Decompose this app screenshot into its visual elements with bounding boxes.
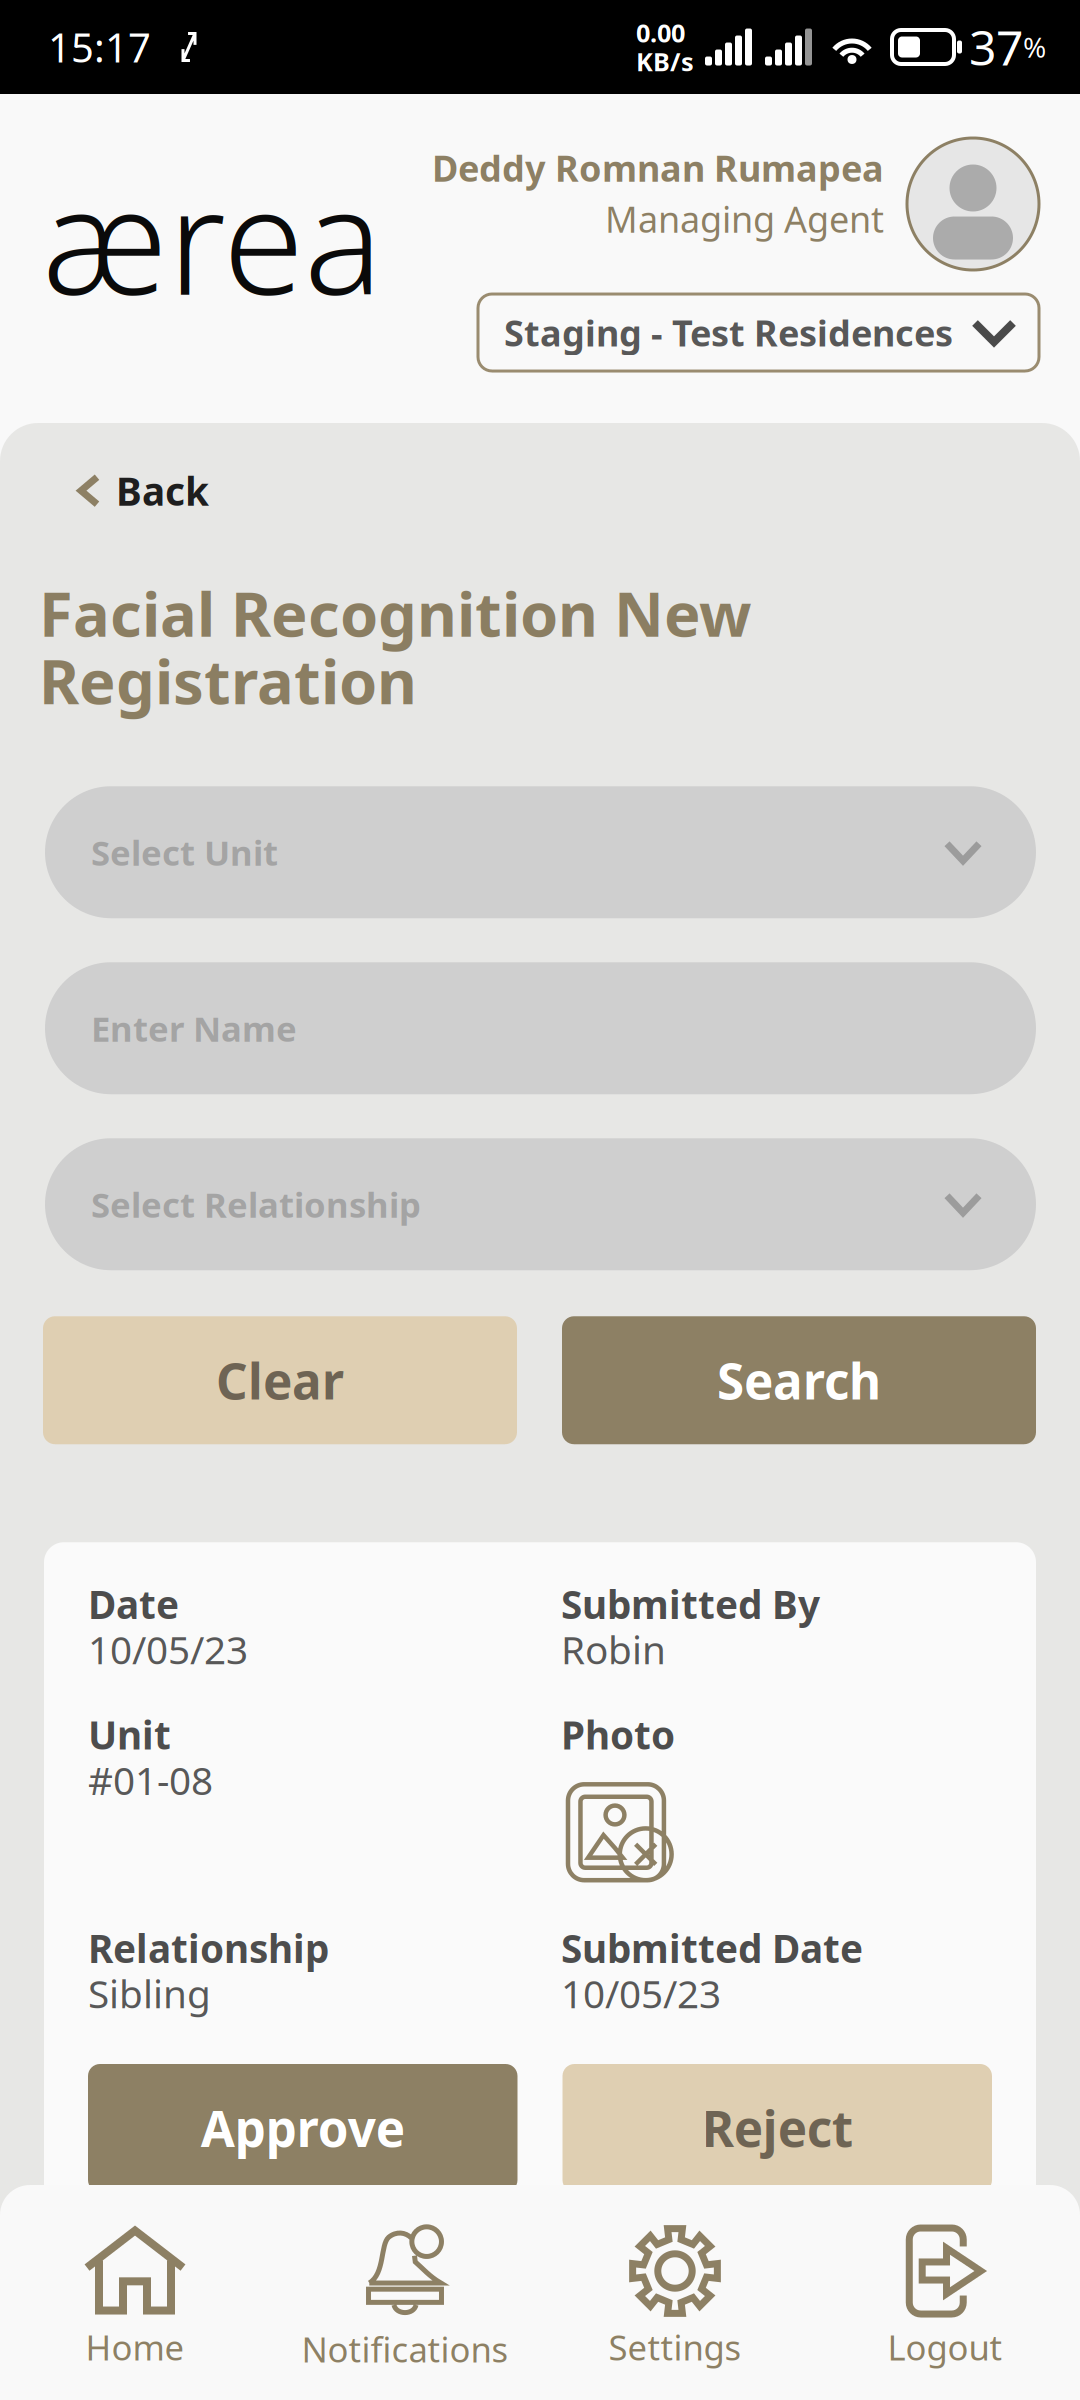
staticText: Relationship	[88, 1922, 329, 1974]
button[interactable]: Search	[562, 1316, 1036, 1444]
button[interactable]: Logout	[810, 2185, 1080, 2400]
staticText: Select Relationship	[91, 1181, 421, 1227]
staticText: %	[1023, 28, 1046, 66]
staticText: Sibling	[88, 1968, 211, 2019]
staticText: Clear	[216, 1347, 344, 1413]
staticText: Robin	[561, 1624, 666, 1675]
button[interactable]: Select Unit	[45, 786, 1036, 918]
staticText: 10/05/23	[561, 1968, 721, 2019]
staticText: Search	[717, 1347, 881, 1413]
staticText: Back	[116, 465, 209, 516]
button[interactable]: Enter Name	[45, 962, 1036, 1094]
button[interactable]: Home	[0, 2185, 270, 2400]
staticText: Photo	[561, 1709, 675, 1760]
staticText: 37	[969, 15, 1023, 79]
button[interactable]: Staging - Test Residences	[478, 294, 1039, 371]
button[interactable]: Reject	[562, 2064, 992, 2192]
button[interactable]: Clear	[43, 1316, 517, 1444]
staticText: Approve	[201, 2095, 405, 2161]
staticText: 10/05/23	[88, 1624, 248, 1675]
button[interactable]: Notifications	[270, 2185, 540, 2400]
staticText: Submitted Date	[561, 1922, 863, 1974]
staticText: Managing Agent	[605, 195, 884, 243]
staticText: Date	[88, 1578, 179, 1629]
staticText: ærea	[42, 138, 383, 338]
staticText: Staging - Test Residences	[504, 309, 953, 356]
staticText: Unit	[88, 1709, 171, 1760]
staticText: #01-08	[88, 1754, 213, 1806]
button[interactable]: Settings	[540, 2185, 810, 2400]
staticText: 15:17	[48, 20, 151, 73]
staticText: KB/s	[636, 44, 694, 78]
button[interactable]: Approve	[88, 2064, 517, 2192]
staticText: Deddy Romnan Rumapea	[432, 144, 884, 192]
staticText: Select Unit	[91, 829, 278, 875]
button[interactable]: Select Relationship	[45, 1138, 1036, 1270]
staticText: Settings	[608, 2324, 741, 2370]
staticText: Logout	[887, 2324, 1002, 2370]
staticText: Submitted By	[561, 1578, 820, 1629]
button[interactable]: Back	[0, 457, 229, 524]
staticText: Registration	[39, 640, 417, 721]
staticText: Reject	[702, 2095, 853, 2161]
staticText: Facial Recognition New	[39, 572, 752, 654]
staticText: Enter Name	[91, 1005, 297, 1051]
staticText: Notifications	[301, 2326, 508, 2372]
staticText: Home	[85, 2324, 184, 2370]
staticText: 0.00	[636, 16, 685, 49]
